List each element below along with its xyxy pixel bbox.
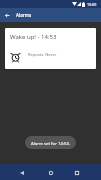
button[interactable]: Back [0,8,14,22]
staticText: Alarms [16,12,32,18]
staticText: Repeats: Never [28,52,57,57]
button[interactable]: Wake up! - 14:53 [5,28,96,69]
button[interactable]: Home [42,165,59,180]
staticText: 19:00 [87,2,97,7]
staticText: Wake up! - 14:53 [10,33,57,41]
button[interactable]: Recents [68,165,85,180]
button[interactable]: Back [13,165,30,180]
staticText: Alarm set for 14:53. [31,140,70,146]
button[interactable]: Alarm set for 14:53. [25,136,76,149]
